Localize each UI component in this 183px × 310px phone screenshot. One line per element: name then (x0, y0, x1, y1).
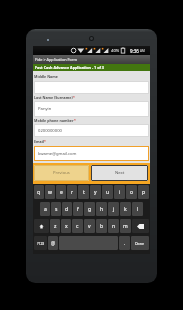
staticText: b (100, 223, 104, 230)
staticText: f (77, 206, 79, 213)
button[interactable]: j (108, 202, 119, 216)
button[interactable]: i (114, 185, 125, 199)
button[interactable]: Next (91, 165, 148, 181)
button[interactable]: Backspace (132, 219, 149, 233)
button[interactable]: ?123 (34, 236, 47, 250)
button[interactable]: u (102, 185, 113, 199)
button[interactable]: Fide > Application Form (33, 55, 150, 64)
staticText: v (88, 223, 91, 230)
staticText: z (54, 223, 57, 230)
staticText: h (100, 206, 104, 213)
button[interactable]: Shift (34, 219, 49, 233)
staticText: Fide > Application Form (35, 57, 77, 62)
staticText: d (65, 206, 69, 213)
staticText: Previous (53, 170, 70, 176)
staticText: kwame@gmail.com (38, 151, 77, 157)
button[interactable]: Fast Cash Advance Application - 1 of 3 (33, 64, 150, 71)
staticText: w (48, 189, 52, 196)
button[interactable]: l (132, 202, 143, 216)
button[interactable]: d (62, 202, 72, 216)
staticText: ?123 (37, 241, 45, 246)
staticText: m (123, 223, 128, 230)
staticText: Middle Name (34, 74, 58, 79)
staticText: Last Name (Surname) (34, 95, 73, 100)
staticText: 9:36 (130, 48, 139, 54)
button[interactable]: . (119, 236, 130, 250)
button[interactable]: n (108, 219, 119, 233)
staticText: l (137, 206, 139, 213)
button[interactable]: v (84, 219, 95, 233)
button[interactable]: @ (48, 236, 58, 250)
staticText: Fast Cash Advance Application - 1 of 3 (35, 65, 104, 70)
button[interactable]: Previous (34, 165, 89, 181)
button[interactable]: m (120, 219, 131, 233)
staticText: j (113, 206, 115, 213)
button[interactable]: b (96, 219, 107, 233)
staticText: 40% (111, 48, 120, 54)
button[interactable]: a (40, 202, 50, 216)
button[interactable]: z (50, 219, 60, 233)
staticText: q (37, 189, 41, 196)
staticText: t (83, 189, 85, 196)
staticText: @ (51, 240, 56, 246)
button[interactable]: r (67, 185, 77, 199)
button[interactable]: 0200000000 (34, 124, 149, 137)
staticText: n (112, 223, 116, 230)
button[interactable]: s (51, 202, 61, 216)
button[interactable]: Panyin (34, 101, 149, 117)
staticText: * (73, 95, 75, 100)
button[interactable]: e (56, 185, 66, 199)
staticText: i (119, 189, 121, 196)
button[interactable]: Done (131, 236, 149, 250)
button[interactable]: f (73, 202, 83, 216)
button[interactable] (34, 81, 149, 94)
staticText: a (44, 206, 47, 213)
button[interactable]: w (45, 185, 55, 199)
button[interactable]: o (126, 185, 137, 199)
staticText: Done (135, 241, 145, 246)
staticText: y (94, 189, 97, 196)
button[interactable]: k (120, 202, 131, 216)
staticText: e (60, 189, 63, 196)
staticText: u (106, 189, 110, 196)
button[interactable]: c (72, 219, 83, 233)
staticText: c (76, 223, 79, 230)
staticText: Email (34, 139, 44, 144)
staticText: p (142, 189, 146, 196)
button[interactable]: p (138, 185, 149, 199)
staticText: Next (115, 170, 125, 176)
button[interactable]: h (96, 202, 107, 216)
staticText: Mobile phone number (34, 118, 74, 123)
staticText: * (74, 118, 76, 123)
staticText: AM (140, 49, 145, 53)
staticText: * (44, 139, 46, 144)
staticText: r (71, 189, 74, 196)
staticText: . (124, 240, 126, 246)
button[interactable]: q (34, 185, 44, 199)
staticText: s (55, 206, 58, 213)
staticText: k (124, 206, 127, 213)
button[interactable]: kwame@gmail.com (34, 146, 149, 161)
staticText: g (88, 206, 92, 213)
staticText: Panyin (38, 106, 52, 112)
button[interactable]: x (61, 219, 71, 233)
staticText: o (130, 189, 134, 196)
staticText: x (65, 223, 68, 230)
button[interactable]: t (78, 185, 89, 199)
staticText: 0200000000 (38, 128, 62, 134)
button[interactable]: y (90, 185, 101, 199)
button[interactable]: g (84, 202, 95, 216)
